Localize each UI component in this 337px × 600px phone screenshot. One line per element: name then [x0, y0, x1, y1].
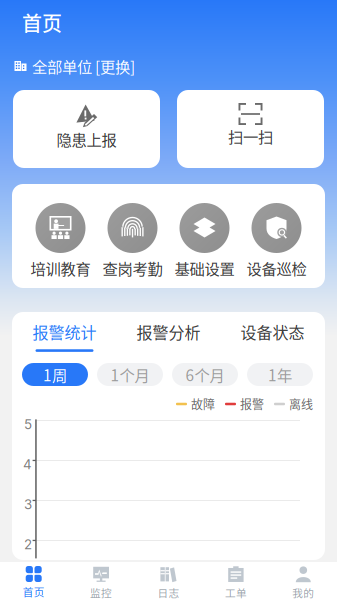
staticText: 隐患上报: [56, 128, 116, 150]
staticText: 离线: [289, 395, 313, 413]
button[interactable]: 扫一扫: [177, 90, 324, 168]
staticText: 1周: [43, 363, 67, 386]
staticText: 1个月: [110, 363, 149, 386]
button[interactable]: 全部单位 [更换]: [0, 58, 337, 74]
staticText: 全部单位 [更换]: [32, 55, 135, 77]
button[interactable]: 首页: [0, 562, 67, 600]
button[interactable]: 6个月: [172, 363, 238, 386]
staticText: 培训教育: [30, 257, 90, 279]
button[interactable]: 工单: [202, 562, 270, 600]
staticText: 我的: [292, 585, 314, 600]
staticText: 报警统计: [32, 320, 96, 343]
staticText: 监控: [90, 585, 112, 600]
button[interactable]: 隐患上报: [13, 90, 160, 168]
button[interactable]: 设备状态: [220, 312, 324, 351]
staticText: 故障: [191, 395, 215, 413]
staticText: 报警分析: [136, 320, 200, 343]
button[interactable]: 查岗考勤: [96, 184, 168, 288]
button[interactable]: 1周: [22, 363, 88, 386]
staticText: 查岗考勤: [102, 257, 162, 279]
staticText: 设备巡检: [246, 257, 306, 279]
staticText: 基础设置: [174, 257, 234, 279]
button[interactable]: 设备巡检: [240, 184, 312, 288]
staticText: 1年: [268, 363, 292, 386]
button[interactable]: 1个月: [97, 363, 163, 386]
button[interactable]: 基础设置: [168, 184, 240, 288]
button[interactable]: 培训教育: [24, 184, 96, 288]
staticText: 扫一扫: [228, 125, 273, 147]
staticText: 4: [23, 456, 32, 472]
button[interactable]: 报警统计: [12, 312, 116, 351]
button[interactable]: 报警分析: [116, 312, 220, 351]
staticText: 2: [24, 536, 32, 552]
button[interactable]: 我的: [270, 562, 337, 600]
button[interactable]: 日志: [135, 562, 202, 600]
staticText: 日志: [157, 585, 179, 600]
staticText: 首页: [22, 8, 62, 37]
staticText: 3: [24, 496, 32, 512]
staticText: 6个月: [185, 363, 224, 386]
staticText: 设备状态: [240, 320, 304, 343]
staticText: 报警: [240, 395, 264, 413]
staticText: 5: [24, 416, 32, 432]
staticText: 工单: [225, 585, 247, 600]
button[interactable]: 监控: [67, 562, 135, 600]
staticText: 首页: [23, 584, 45, 599]
button[interactable]: 1年: [247, 363, 313, 386]
